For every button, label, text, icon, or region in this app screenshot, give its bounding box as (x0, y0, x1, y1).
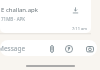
button[interactable]: Download (69, 4, 81, 16)
button[interactable]: Payments (63, 43, 74, 54)
button[interactable]: E challan.apk (0, 0, 91, 33)
staticText: E challan.apk (1, 6, 38, 14)
staticText: 7:11 am (72, 26, 87, 31)
staticText: 71MB · APK (1, 16, 26, 22)
button[interactable]: Message (0, 40, 97, 56)
staticText: Message (0, 44, 26, 53)
button[interactable]: Camera (84, 43, 95, 54)
button[interactable]: Attach (46, 43, 57, 54)
